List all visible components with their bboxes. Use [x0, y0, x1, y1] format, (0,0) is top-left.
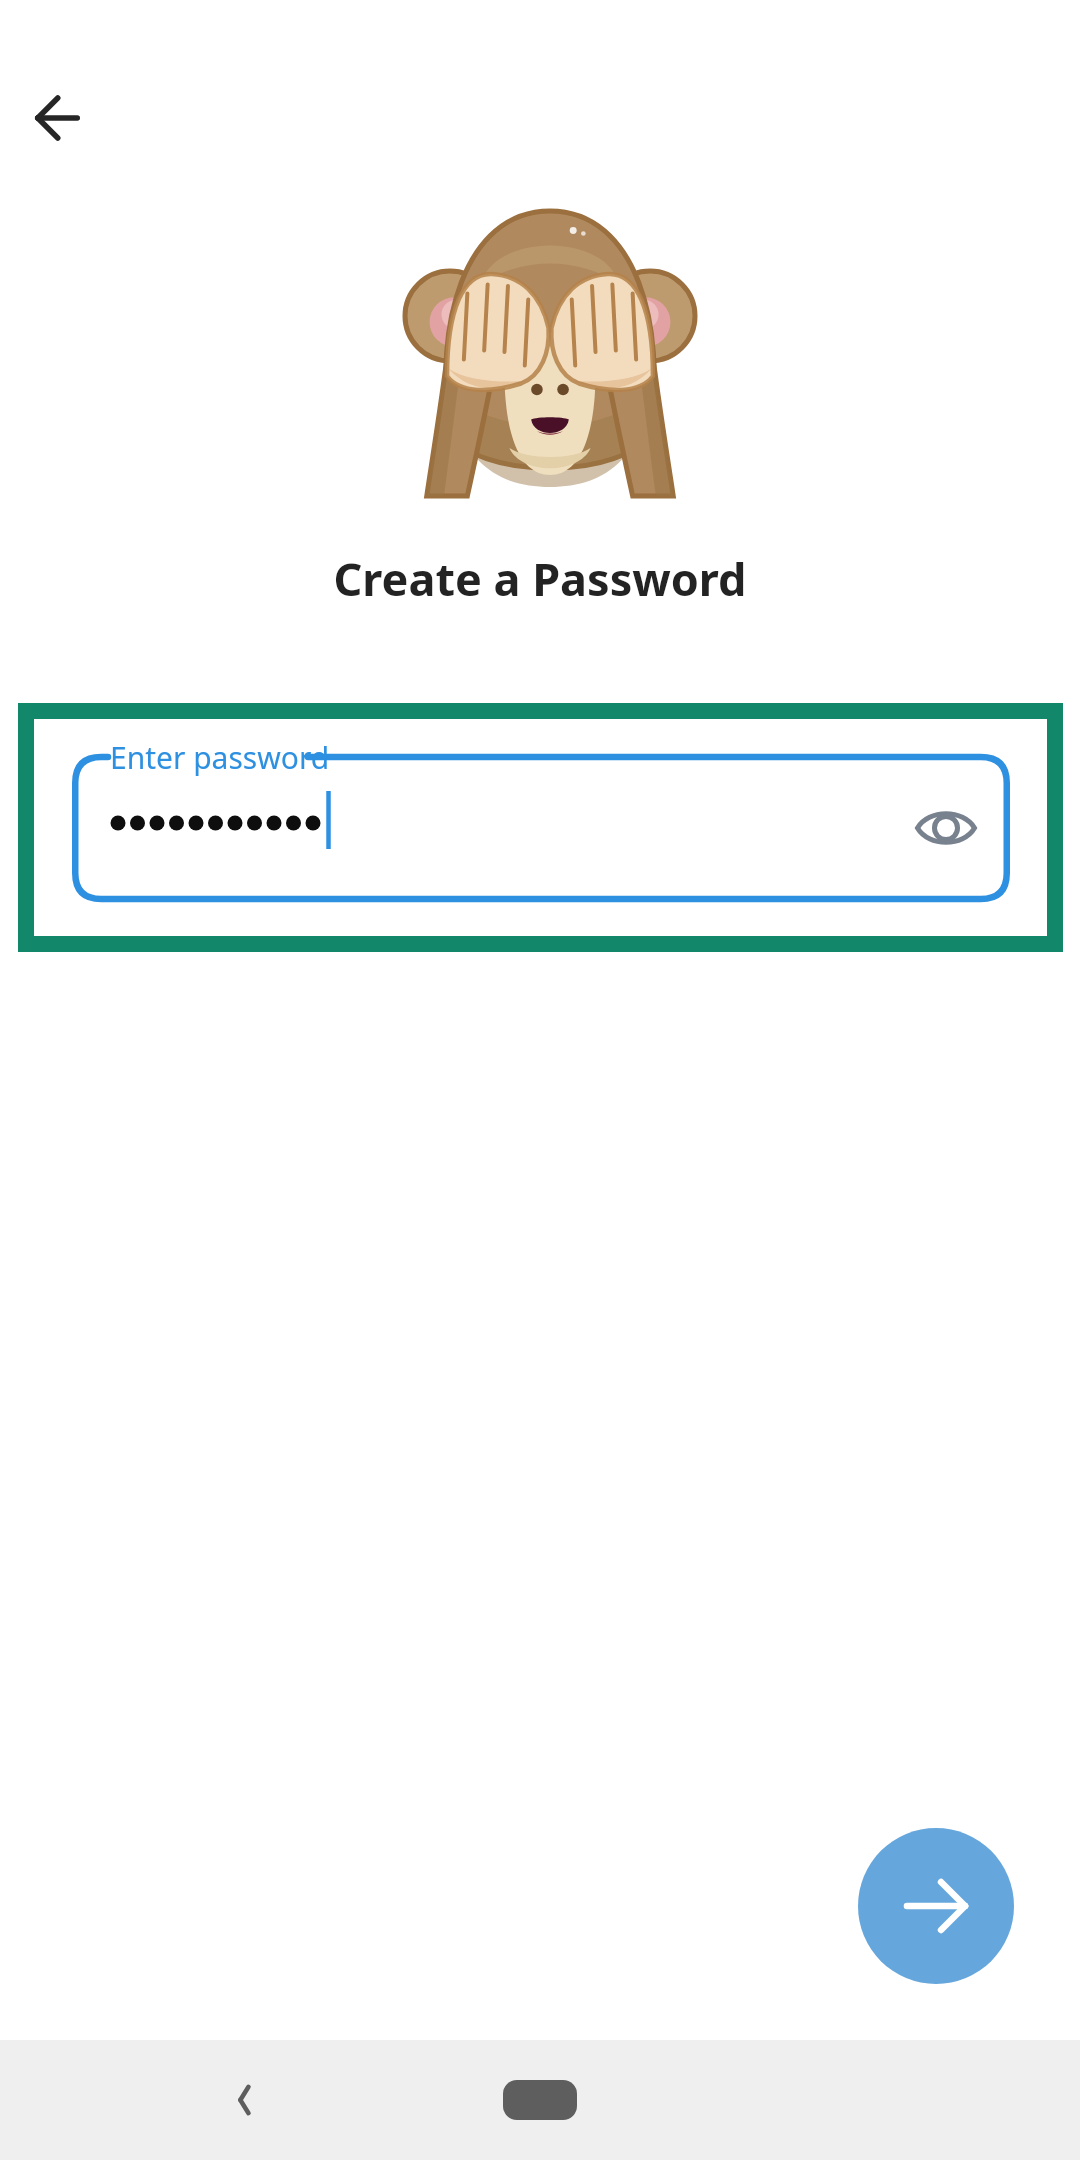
- staticText: Enter password: [110, 737, 330, 778]
- button[interactable]: Back: [18, 80, 94, 156]
- button[interactable]: Back: [200, 2040, 290, 2160]
- staticText: Create a Password: [333, 548, 747, 609]
- button[interactable]: Next: [858, 1828, 1014, 1984]
- button[interactable]: Enter password: [72, 745, 1010, 911]
- button[interactable]: Show password: [908, 790, 984, 866]
- button[interactable]: Home: [470, 2040, 610, 2160]
